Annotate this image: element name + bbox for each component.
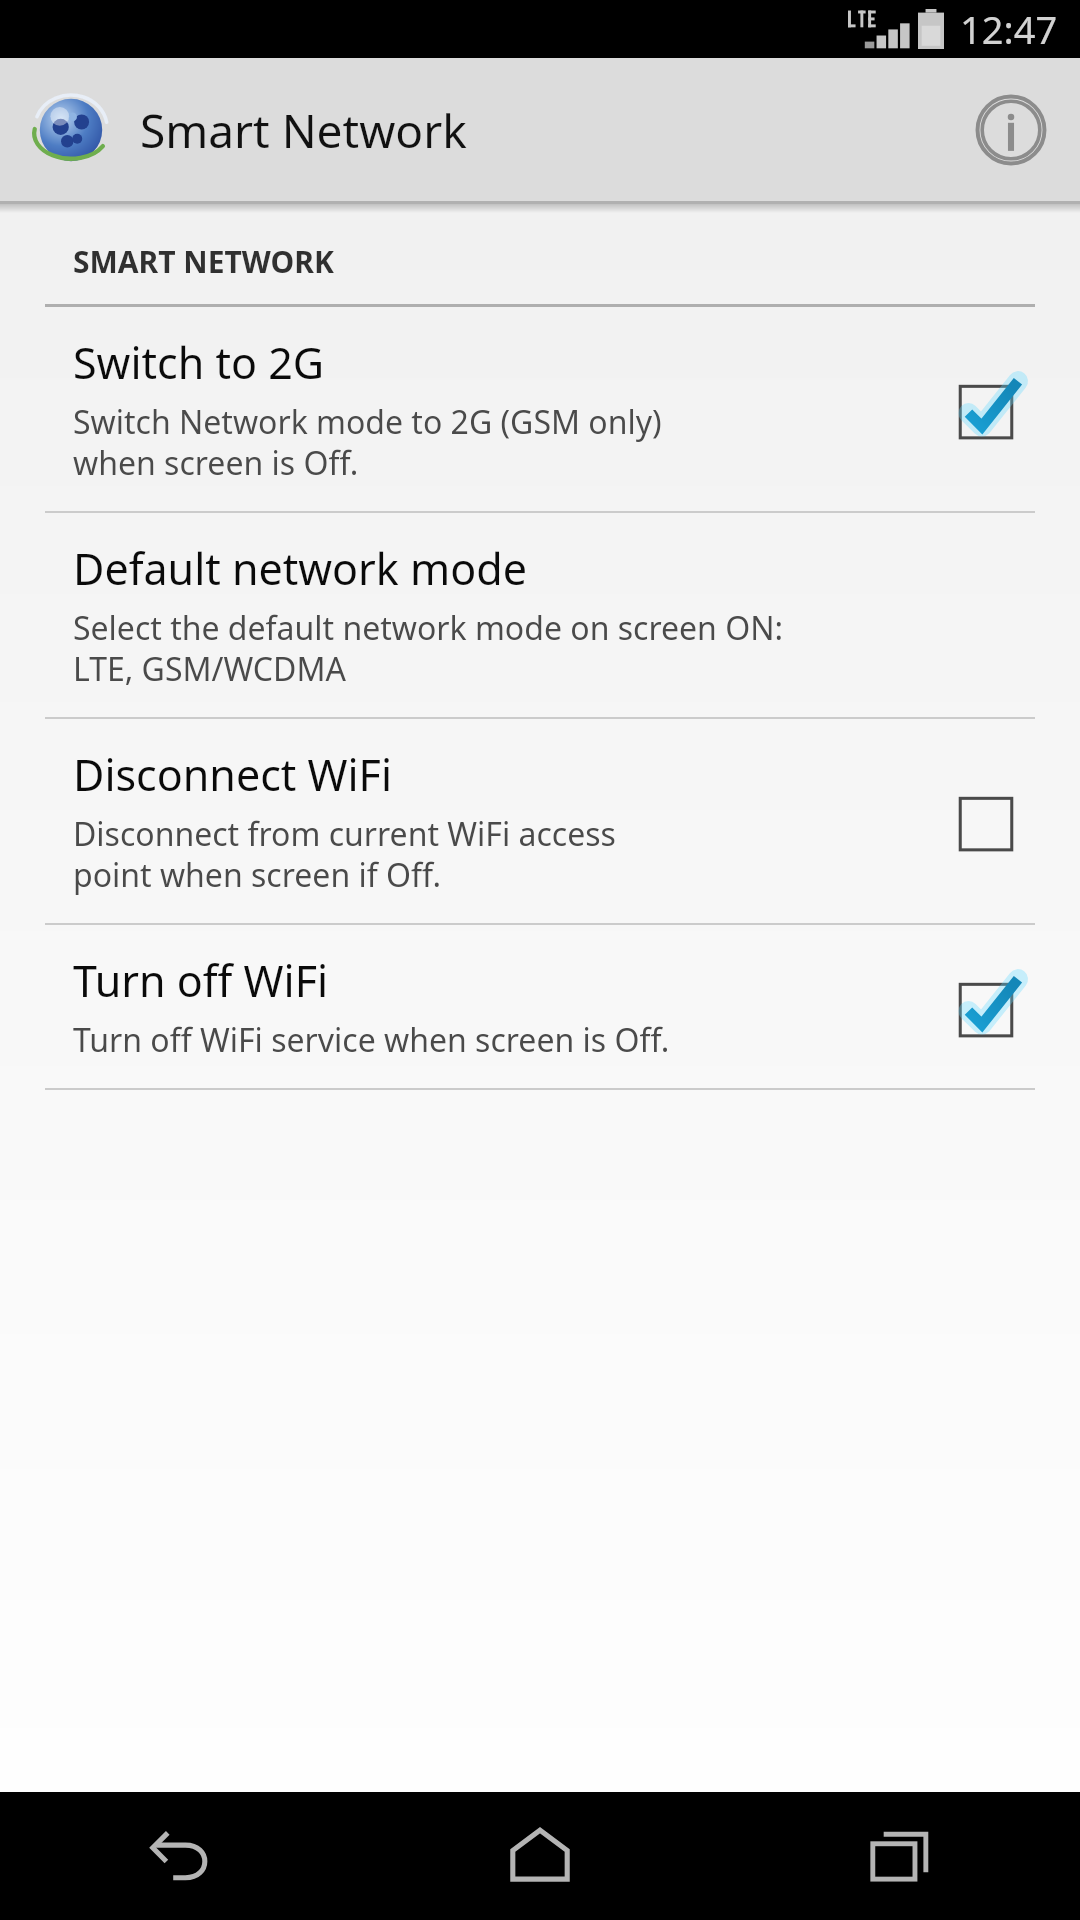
staticText: Switch to 2G xyxy=(73,333,325,392)
button[interactable]: Home xyxy=(360,1792,720,1920)
button[interactable]: Unchecked xyxy=(940,775,1032,867)
staticText: SMART NETWORK xyxy=(73,241,334,282)
staticText: Default network mode xyxy=(73,539,527,598)
button[interactable]: Disconnect WiFi xyxy=(0,719,1080,923)
staticText: Select the default network mode on scree… xyxy=(73,606,784,691)
staticText: Disconnect WiFi xyxy=(73,745,392,804)
staticText: Disconnect from current WiFi access poin… xyxy=(73,812,616,897)
button[interactable]: Info xyxy=(956,75,1066,185)
staticText: Turn off WiFi xyxy=(73,951,329,1010)
button[interactable]: Default network mode xyxy=(0,513,1080,717)
button[interactable]: Recent apps xyxy=(720,1792,1080,1920)
button[interactable]: Back xyxy=(0,1792,360,1920)
staticText: Switch Network mode to 2G (GSM only) whe… xyxy=(73,400,662,485)
staticText: Smart Network xyxy=(140,99,467,162)
button[interactable]: Switch to 2G xyxy=(0,307,1080,511)
button[interactable]: Checked xyxy=(940,961,1032,1053)
staticText: 12:47 xyxy=(960,3,1058,55)
staticText: Turn off WiFi service when screen is Off… xyxy=(73,1018,670,1062)
button[interactable]: Checked xyxy=(940,363,1032,455)
button[interactable]: Turn off WiFi xyxy=(0,925,1080,1088)
